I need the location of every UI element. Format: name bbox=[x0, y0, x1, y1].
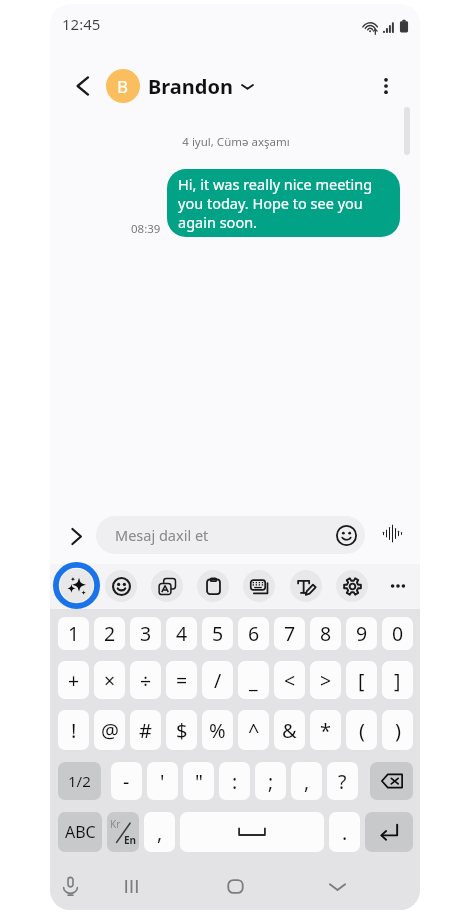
button[interactable]: ( bbox=[346, 710, 377, 750]
button[interactable]: Clipboard bbox=[197, 570, 229, 602]
button[interactable]: Space bbox=[180, 812, 324, 852]
staticText: Brandon bbox=[148, 73, 233, 100]
button[interactable]: Switch language Kr En bbox=[107, 812, 139, 852]
staticText: & bbox=[282, 717, 297, 744]
button[interactable]: 1 bbox=[58, 617, 89, 650]
button[interactable]: Enter bbox=[365, 812, 413, 852]
button[interactable]: [ bbox=[346, 661, 377, 699]
staticText: + bbox=[68, 667, 80, 694]
staticText: Hi, it was really nice meeting you today… bbox=[178, 174, 390, 232]
staticText: 08:39 bbox=[131, 221, 161, 237]
button[interactable]: ÷ bbox=[130, 661, 161, 699]
button[interactable]: Mesaj daxil et bbox=[96, 516, 365, 554]
staticText: - bbox=[123, 768, 130, 795]
button[interactable]: @ bbox=[94, 710, 125, 750]
staticText: " bbox=[195, 768, 203, 795]
button[interactable]: > bbox=[310, 661, 341, 699]
button[interactable]: Settings bbox=[336, 570, 368, 602]
button[interactable]: ^ bbox=[238, 710, 269, 750]
button[interactable]: _ bbox=[238, 661, 269, 699]
button[interactable]: 0 bbox=[382, 617, 413, 650]
button[interactable]: 3 bbox=[130, 617, 161, 650]
button[interactable]: , bbox=[291, 762, 322, 800]
button[interactable]: Home bbox=[211, 864, 259, 908]
button[interactable]: & bbox=[274, 710, 305, 750]
button[interactable]: Voice input bbox=[376, 517, 408, 549]
button[interactable]: Back bbox=[64, 68, 100, 104]
staticText: : bbox=[232, 768, 238, 795]
staticText: 4 bbox=[176, 620, 188, 647]
button[interactable]: . bbox=[329, 812, 360, 852]
staticText: 1 bbox=[68, 620, 80, 647]
button[interactable]: = bbox=[166, 661, 197, 699]
staticText: ] bbox=[394, 667, 401, 694]
staticText: ^ bbox=[248, 717, 260, 744]
button[interactable]: Backspace bbox=[370, 762, 413, 800]
button[interactable]: : bbox=[219, 762, 250, 800]
staticText: ( bbox=[359, 717, 365, 744]
staticText: > bbox=[320, 667, 332, 694]
button[interactable]: % bbox=[202, 710, 233, 750]
button[interactable]: # bbox=[130, 710, 161, 750]
button[interactable]: Expand toolbar bbox=[58, 518, 94, 554]
button[interactable]: $ bbox=[166, 710, 197, 750]
button[interactable]: " bbox=[183, 762, 214, 800]
staticText: En bbox=[124, 833, 137, 847]
button[interactable]: AI assist bbox=[52, 561, 101, 610]
button[interactable]: ; bbox=[255, 762, 286, 800]
button[interactable]: Recents bbox=[107, 864, 155, 908]
button[interactable]: Hi, it was really nice meeting you today… bbox=[167, 169, 400, 237]
staticText: @ bbox=[101, 717, 119, 744]
button[interactable]: ' bbox=[147, 762, 178, 800]
staticText: 0 bbox=[392, 620, 404, 647]
staticText: × bbox=[104, 667, 116, 694]
staticText: . bbox=[342, 819, 348, 846]
button[interactable]: Translate bbox=[151, 570, 183, 602]
button[interactable]: - bbox=[111, 762, 142, 800]
staticText: Mesaj daxil et bbox=[115, 525, 209, 545]
button[interactable]: More bbox=[382, 570, 414, 602]
staticText: ÷ bbox=[140, 667, 152, 694]
button[interactable]: < bbox=[274, 661, 305, 699]
staticText: , bbox=[304, 768, 310, 795]
button[interactable]: Keyboard modes bbox=[243, 570, 275, 602]
button[interactable]: Emoji bbox=[105, 570, 137, 602]
staticText: < bbox=[284, 667, 296, 694]
staticText: ? bbox=[338, 768, 347, 795]
button[interactable]: ! bbox=[58, 710, 89, 750]
staticText: 3 bbox=[140, 620, 152, 647]
button[interactable]: ? bbox=[327, 762, 358, 800]
button[interactable]: 6 bbox=[238, 617, 269, 650]
button[interactable]: 4 bbox=[166, 617, 197, 650]
button[interactable]: Hide keyboard bbox=[313, 864, 361, 908]
staticText: ) bbox=[395, 717, 401, 744]
staticText: Kr bbox=[110, 817, 121, 831]
button[interactable]: Handwriting bbox=[290, 570, 322, 602]
button[interactable]: / bbox=[202, 661, 233, 699]
button[interactable]: 5 bbox=[202, 617, 233, 650]
button[interactable]: 1/2 bbox=[58, 762, 101, 800]
button[interactable]: More options bbox=[368, 68, 404, 104]
button[interactable]: B bbox=[106, 63, 254, 109]
staticText: / bbox=[214, 667, 222, 694]
staticText: * bbox=[320, 717, 332, 744]
button[interactable]: * bbox=[310, 710, 341, 750]
button[interactable]: ABC bbox=[58, 812, 102, 852]
staticText: % bbox=[209, 717, 226, 744]
staticText: $ bbox=[176, 717, 188, 744]
button[interactable]: ] bbox=[382, 661, 413, 699]
staticText: 9 bbox=[356, 620, 368, 647]
button[interactable]: + bbox=[58, 661, 89, 699]
button[interactable]: 7 bbox=[274, 617, 305, 650]
button[interactable]: ) bbox=[382, 710, 413, 750]
button[interactable]: 9 bbox=[346, 617, 377, 650]
staticText: , bbox=[157, 819, 163, 846]
staticText: 1/2 bbox=[68, 771, 91, 791]
button[interactable]: × bbox=[94, 661, 125, 699]
button[interactable]: 8 bbox=[310, 617, 341, 650]
staticText: 5 bbox=[212, 620, 224, 647]
button[interactable]: 2 bbox=[94, 617, 125, 650]
button[interactable]: Voice input bbox=[50, 864, 94, 908]
staticText: ABC bbox=[65, 821, 96, 843]
button[interactable]: , bbox=[144, 812, 175, 852]
